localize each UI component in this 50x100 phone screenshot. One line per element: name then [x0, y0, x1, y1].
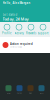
staticText: Cards — [17, 92, 22, 94]
staticText: Action required — [10, 42, 33, 46]
staticText: Get started — [2, 13, 17, 16]
staticText: More — [39, 92, 43, 94]
button[interactable]: Profile — [1, 23, 13, 35]
staticText: Hello, Alex Morgan — [2, 1, 30, 5]
staticText: Support — [37, 31, 48, 35]
button[interactable]: Plan — [25, 85, 36, 94]
staticText: Today, 24 May — [2, 16, 28, 22]
staticText: Activity — [14, 31, 23, 35]
button[interactable]: Cards — [14, 85, 25, 94]
staticText: Home — [6, 92, 10, 94]
staticText: Rewards — [26, 31, 36, 35]
button[interactable]: Activity — [13, 23, 25, 35]
staticText: Profile — [2, 31, 12, 35]
staticText: Plan — [29, 92, 32, 94]
button[interactable]: Rewards — [25, 23, 37, 35]
button[interactable]: More — [36, 85, 47, 94]
staticText: Verify your details — [10, 46, 22, 48]
button[interactable]: Action required — [0, 37, 50, 53]
button[interactable]: Home — [3, 85, 14, 94]
button[interactable]: Support — [37, 23, 49, 35]
